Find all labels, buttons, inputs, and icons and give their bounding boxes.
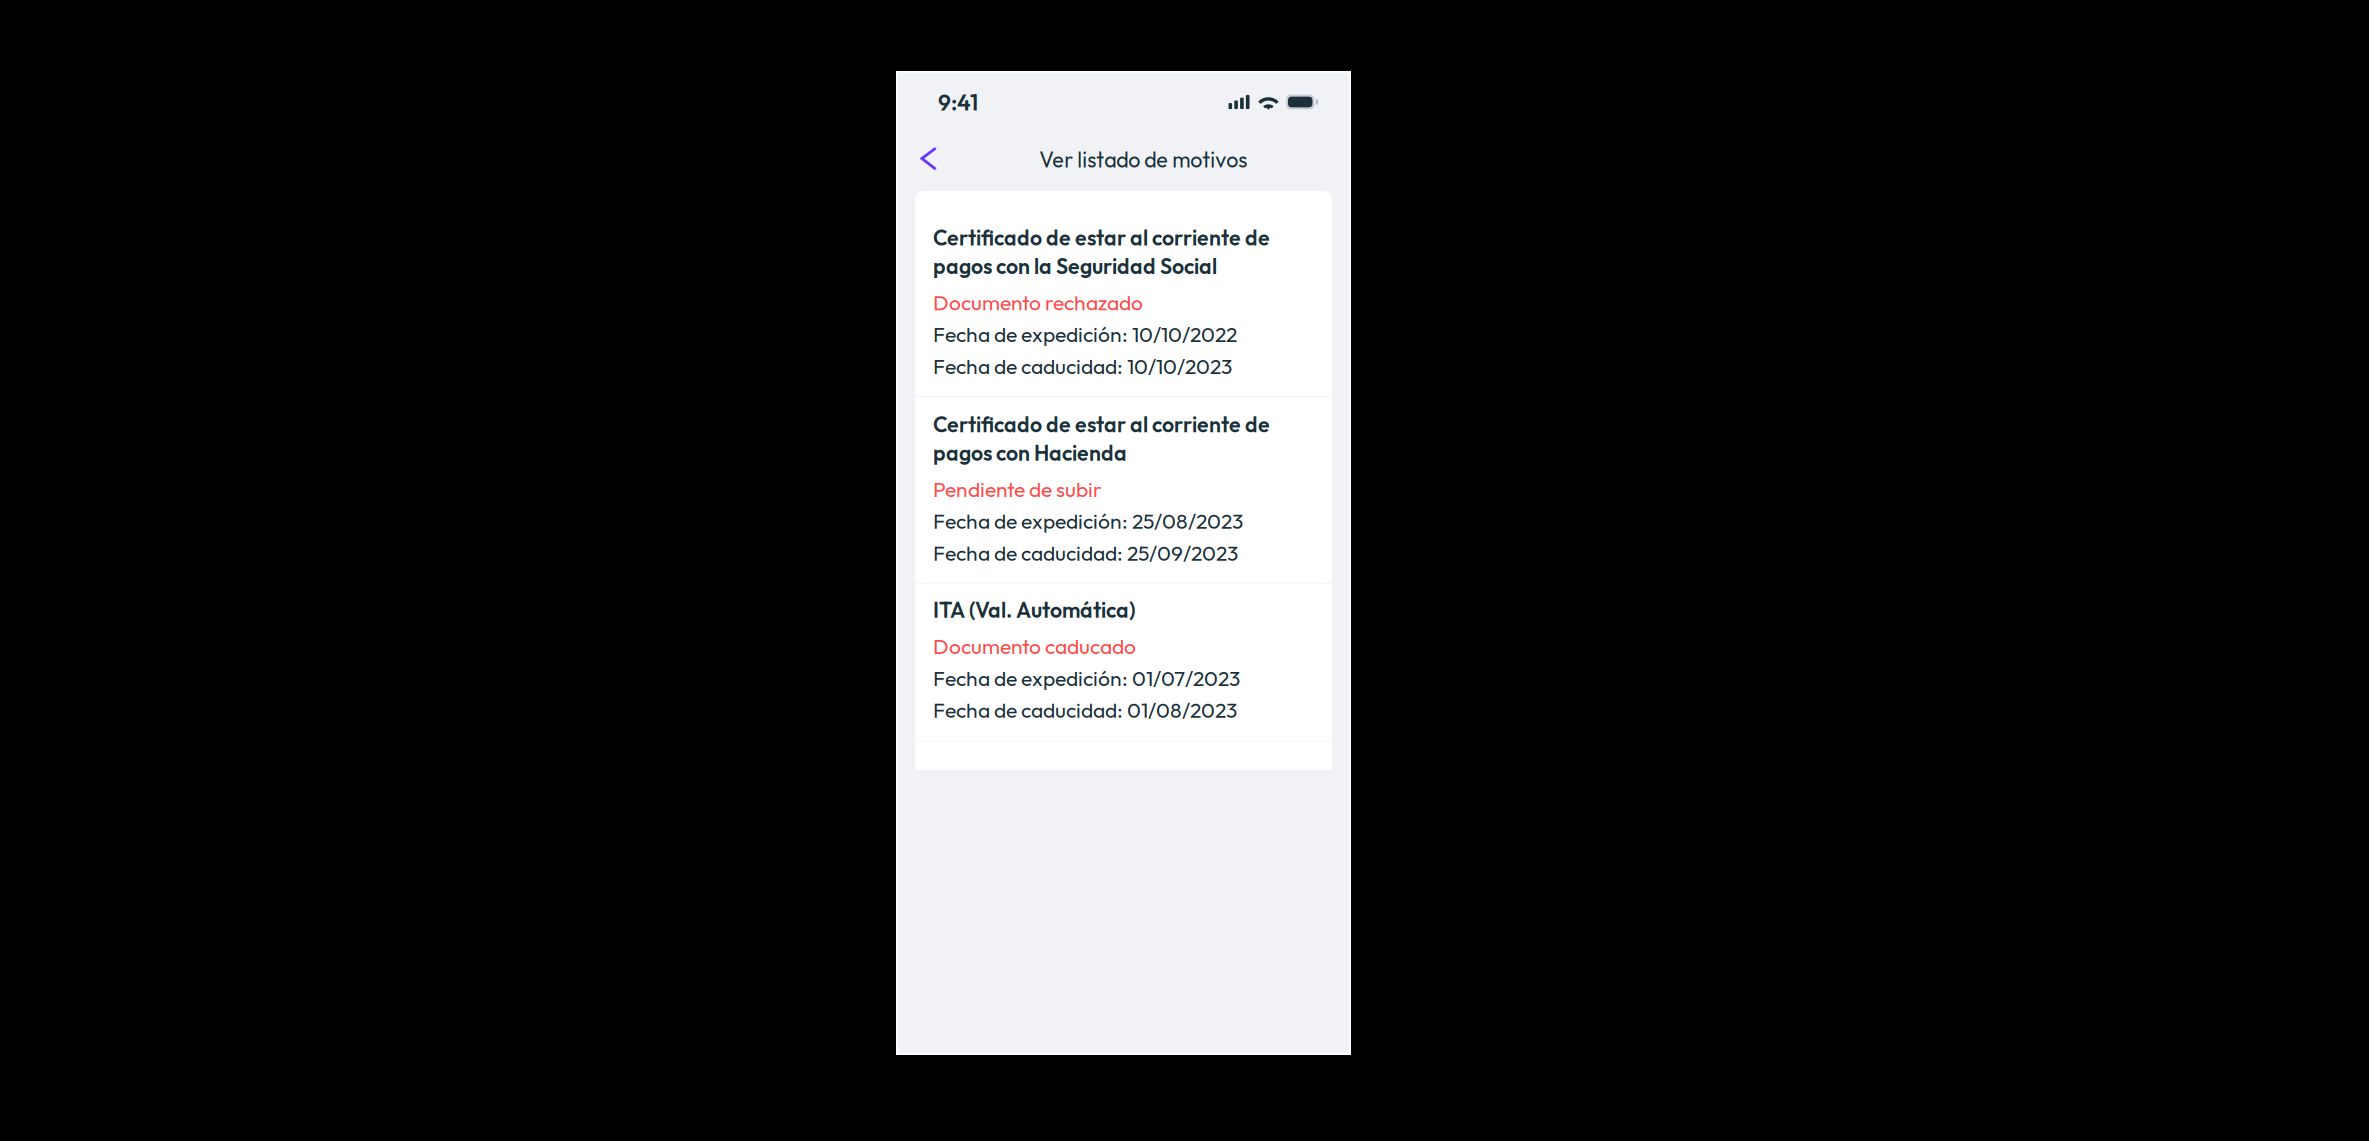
staticText: pagos con Hacienda [933, 439, 1127, 466]
staticText: Fecha de caducidad: 25/09/2023 [933, 540, 1238, 566]
staticText: Fecha de expedición: 25/08/2023 [933, 508, 1243, 534]
staticText: 9:41 [938, 88, 978, 116]
staticText: Documento rechazado [933, 289, 1143, 316]
staticText: Fecha de caducidad: 10/10/2023 [933, 353, 1232, 379]
staticText: Certificado de estar al corriente de [933, 224, 1270, 251]
staticText: Certificado de estar al corriente de [933, 411, 1270, 438]
staticText: Documento caducado [933, 633, 1136, 659]
staticText: Fecha de expedición: 10/10/2022 [933, 321, 1237, 347]
button[interactable]: Certificado de estar al corriente de [915, 397, 1332, 583]
button[interactable]: Certificado de estar al corriente de [915, 191, 1332, 396]
button[interactable]: Back [896, 142, 938, 176]
staticText: Fecha de expedición: 01/07/2023 [933, 665, 1240, 691]
button[interactable]: ITA (Val. Automática) [915, 584, 1332, 741]
staticText: ITA (Val. Automática) [933, 597, 1135, 623]
staticText: Fecha de caducidad: 01/08/2023 [933, 697, 1237, 723]
staticText: Pendiente de subir [933, 476, 1102, 502]
staticText: pagos con la Seguridad Social [933, 253, 1217, 279]
staticText: Ver listado de motivos [1039, 146, 1247, 173]
